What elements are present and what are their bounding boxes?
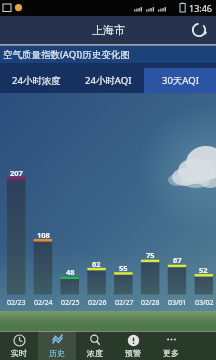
button[interactable]: 历史 <box>38 331 76 360</box>
staticText: 62 <box>92 259 101 269</box>
staticText: 02/24 <box>34 298 53 308</box>
staticText: 03/02 <box>195 298 214 308</box>
staticText: 预警 <box>125 348 141 358</box>
staticText: 03/01 <box>168 298 187 308</box>
staticText: 更多 <box>163 348 179 358</box>
button[interactable]: 预警 <box>114 331 152 360</box>
staticText: 48 <box>66 267 75 277</box>
staticText: 上海市 <box>92 23 125 37</box>
staticText: 24小时AQI <box>85 74 132 87</box>
staticText: 02/23 <box>7 298 26 308</box>
staticText: 52 <box>199 265 208 275</box>
staticText: 实时 <box>11 348 27 358</box>
button[interactable]: 实时 <box>0 331 38 360</box>
button[interactable]: Refresh <box>182 16 216 46</box>
staticText: 02/28 <box>141 298 160 308</box>
staticText: 13:46 <box>189 2 213 14</box>
staticText: 浓度 <box>87 348 103 358</box>
staticText: 108 <box>37 230 50 240</box>
staticText: 30天AQI <box>162 74 199 87</box>
staticText: 67 <box>173 255 182 265</box>
button[interactable]: 24小时浓度 <box>0 63 72 93</box>
button[interactable]: 24小时AQI <box>72 63 144 93</box>
staticText: 55 <box>119 263 128 273</box>
button[interactable]: 更多 <box>152 331 190 360</box>
staticText: 02/27 <box>115 298 134 308</box>
button[interactable]: 浓度 <box>76 331 114 360</box>
button[interactable]: 30天AQI <box>144 63 216 93</box>
staticText: 24小时浓度 <box>12 74 61 87</box>
staticText: 207 <box>10 168 23 178</box>
staticText: 02/25 <box>61 298 80 308</box>
staticText: 空气质量指数(AQI)历史变化图 <box>3 48 130 61</box>
staticText: 历史 <box>49 348 65 358</box>
staticText: 75 <box>146 250 155 260</box>
staticText: 02/26 <box>88 298 107 308</box>
